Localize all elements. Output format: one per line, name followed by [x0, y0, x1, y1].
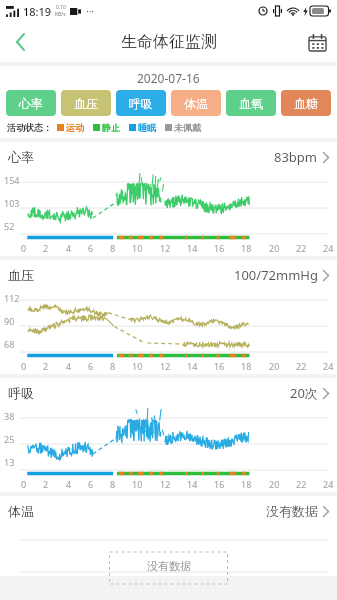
staticText: 20次 — [290, 384, 318, 402]
staticText: 18 — [241, 242, 252, 254]
staticText: 没有数据 — [266, 503, 318, 519]
button[interactable]: 呼吸 — [116, 90, 166, 116]
staticText: 体温 — [184, 96, 208, 111]
staticText: 2 — [43, 478, 49, 490]
staticText: 8 — [110, 360, 116, 372]
button[interactable]: Calendar — [297, 22, 337, 62]
staticText: 呼吸 — [129, 96, 153, 111]
staticText: 38 — [4, 410, 15, 422]
staticText: 2 — [43, 360, 49, 372]
staticText: 10 — [132, 360, 143, 372]
staticText: 4 — [66, 242, 72, 254]
staticText: 20 — [269, 242, 280, 254]
staticText: 90 — [4, 315, 15, 327]
staticText: 154 — [4, 174, 20, 186]
staticText: 8 — [110, 478, 116, 490]
button[interactable]: 体温 — [0, 496, 337, 526]
staticText: 16 — [214, 242, 225, 254]
staticText: ··· — [86, 4, 95, 18]
staticText: 14 — [187, 242, 198, 254]
staticText: 8 — [110, 242, 116, 254]
staticText: 呼吸 — [8, 385, 34, 401]
staticText: 4 — [66, 478, 72, 490]
button[interactable]: 血氧 — [226, 90, 276, 116]
staticText: 24 — [323, 478, 334, 490]
staticText: 10 — [132, 478, 143, 490]
staticText: 0 — [21, 360, 27, 372]
staticText: 13 — [4, 456, 15, 468]
staticText: 22 — [296, 242, 307, 254]
staticText: 血糖 — [294, 96, 318, 111]
button[interactable]: 呼吸 — [0, 378, 337, 408]
staticText: 52 — [4, 220, 15, 232]
staticText: 24 — [323, 360, 334, 372]
button[interactable]: 心率 — [0, 142, 337, 172]
staticText: 生命体征监测 — [121, 32, 217, 52]
staticText: 12 — [160, 360, 171, 372]
staticText: 血氧 — [239, 96, 263, 111]
staticText: 25 — [4, 433, 15, 445]
staticText: 血压 — [8, 267, 34, 283]
staticText: 22 — [296, 478, 307, 490]
staticText: 12 — [160, 478, 171, 490]
staticText: 18 — [241, 478, 252, 490]
staticText: 14 — [187, 478, 198, 490]
staticText: 16 — [214, 478, 225, 490]
staticText: 0.10 — [56, 4, 66, 11]
staticText: KB/s — [55, 11, 66, 18]
staticText: 未佩戴 — [174, 122, 201, 133]
staticText: 血压 — [74, 96, 98, 111]
staticText: 0 — [21, 478, 27, 490]
staticText: 2 — [43, 242, 49, 254]
staticText: 68 — [4, 338, 15, 350]
staticText: 0 — [21, 242, 27, 254]
staticText: 6 — [88, 478, 94, 490]
staticText: 14 — [187, 360, 198, 372]
button[interactable]: 体温 — [171, 90, 221, 116]
staticText: 112 — [4, 292, 20, 304]
staticText: 运动 — [66, 122, 84, 133]
staticText: 18:19 — [23, 4, 52, 19]
button[interactable]: 血压 — [61, 90, 111, 116]
staticText: 4 — [66, 360, 72, 372]
staticText: 心率 — [19, 96, 43, 111]
staticText: 12 — [160, 242, 171, 254]
staticText: 100/72mmHg — [234, 266, 318, 284]
staticText: 10 — [132, 242, 143, 254]
staticText: 6 — [88, 360, 94, 372]
staticText: 24 — [323, 242, 334, 254]
button[interactable]: 心率 — [6, 90, 56, 116]
staticText: 20 — [269, 360, 280, 372]
staticText: 心率 — [8, 149, 34, 165]
staticText: 16 — [214, 360, 225, 372]
staticText: 活动状态： — [7, 122, 52, 133]
staticText: 2020-07-16 — [137, 70, 200, 86]
staticText: 静止 — [102, 122, 120, 133]
button[interactable]: 血糖 — [281, 90, 331, 116]
button[interactable]: 血压 — [0, 260, 337, 290]
staticText: 体温 — [8, 503, 34, 519]
staticText: 睡眠 — [138, 122, 156, 133]
staticText: 22 — [296, 360, 307, 372]
staticText: 6 — [88, 242, 94, 254]
staticText: 83bpm — [274, 148, 318, 166]
staticText: 18 — [241, 360, 252, 372]
staticText: 103 — [4, 197, 20, 209]
staticText: 没有数据 — [147, 559, 191, 573]
staticText: 20 — [269, 478, 280, 490]
button[interactable]: Back — [0, 22, 40, 62]
